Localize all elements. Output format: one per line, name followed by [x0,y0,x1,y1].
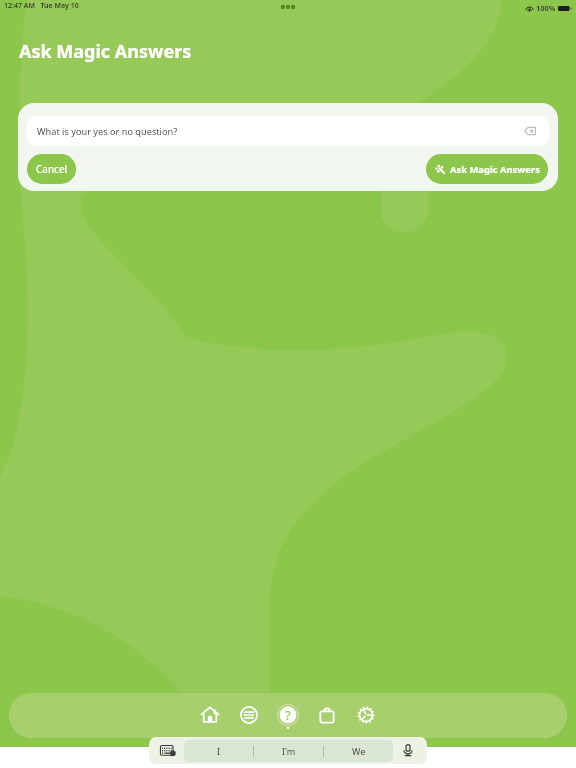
staticText: Cancel [36,162,68,176]
button[interactable]: We [324,740,393,762]
staticText: I'm [282,745,296,757]
button[interactable]: What is your yes or no question? [27,116,549,146]
staticText: What is your yes or no question? [37,125,178,138]
staticText: I [217,745,221,757]
staticText: ? [285,706,291,724]
button[interactable]: I [184,740,253,762]
button[interactable]: Voice input [401,743,415,757]
button[interactable]: Settings [346,695,386,735]
staticText: 12:47 AM Tue May 10 [4,1,79,11]
button[interactable]: Cancel [27,154,76,184]
staticText: We [352,745,366,757]
staticText: Ask Magic Answers [450,163,540,176]
button[interactable]: I'm [254,740,323,762]
button[interactable]: Bag [307,695,347,735]
button[interactable]: Home [190,695,230,735]
staticText: Ask Magic Answers [19,39,192,64]
button[interactable]: Feed [229,695,269,735]
button[interactable]: Keyboard settings [160,745,175,756]
button[interactable]: Ask [268,695,308,735]
button[interactable]: Ask Magic Answers [426,154,548,184]
staticText: 100% [536,3,556,13]
button[interactable]: Clear text [524,125,536,137]
